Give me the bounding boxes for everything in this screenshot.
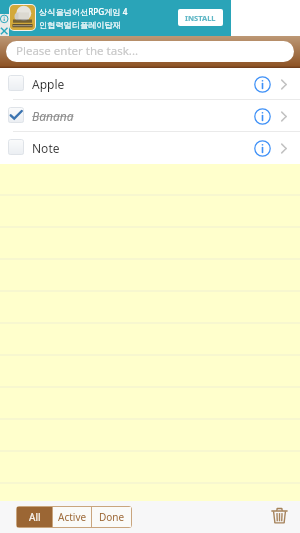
button[interactable]: Open details <box>274 139 292 157</box>
staticText: Please enter the task... <box>16 43 139 59</box>
button[interactable]: Toggle task <box>8 107 24 123</box>
button[interactable]: Info <box>250 136 274 160</box>
button[interactable]: All <box>17 507 52 527</box>
button[interactable]: Toggle task <box>8 139 24 155</box>
button[interactable]: Toggle task <box>0 132 300 164</box>
staticText: Banana <box>32 108 74 124</box>
button[interactable]: Toggle task <box>8 75 24 91</box>
staticText: 상식을넘어선RPG게임 4 <box>39 6 128 17</box>
button[interactable]: Toggle task <box>0 68 300 100</box>
staticText: Note <box>32 140 60 156</box>
button[interactable]: Please enter the task... <box>6 41 294 62</box>
staticText: All <box>29 510 41 524</box>
staticText: Apple <box>32 76 65 92</box>
staticText: Done <box>99 510 125 524</box>
button[interactable]: Delete completed <box>266 502 292 528</box>
button[interactable]: Open details <box>274 107 292 125</box>
staticText: INSTALL <box>185 13 216 23</box>
staticText: Active <box>58 510 87 524</box>
button[interactable]: Active <box>53 507 91 527</box>
button[interactable]: Info <box>250 104 274 128</box>
button[interactable]: Done <box>92 507 131 527</box>
staticText: 인협력멀티플레이탑재 <box>39 20 121 30</box>
button[interactable]: INSTALL <box>178 9 223 26</box>
button[interactable]: Open details <box>274 75 292 93</box>
button[interactable]: Toggle task <box>0 100 300 132</box>
button[interactable]: Info <box>250 72 274 96</box>
